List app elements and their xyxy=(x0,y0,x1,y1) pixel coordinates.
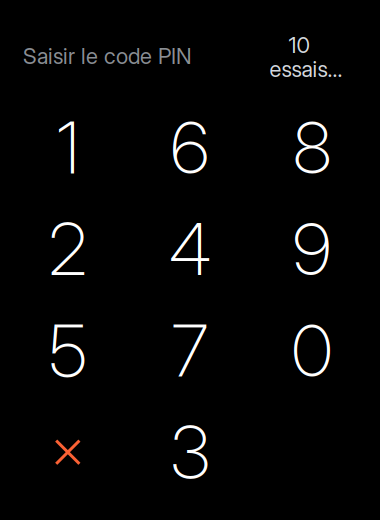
button[interactable]: Supprimer xyxy=(7,401,129,503)
staticText: 5 xyxy=(49,307,87,394)
staticText: essais... xyxy=(269,56,342,82)
button[interactable]: 9 xyxy=(251,198,373,300)
staticText: 8 xyxy=(293,104,331,191)
button[interactable]: 1 xyxy=(7,97,129,198)
button[interactable]: 6 xyxy=(129,97,251,198)
button[interactable]: 5 xyxy=(7,300,129,401)
staticText: 3 xyxy=(170,409,209,495)
button[interactable]: 3 xyxy=(129,401,251,503)
button[interactable]: 8 xyxy=(251,97,373,198)
button[interactable]: 0 xyxy=(251,300,373,401)
staticText: 4 xyxy=(169,206,211,292)
staticText: 10 xyxy=(288,32,309,58)
staticText: 9 xyxy=(292,206,331,292)
staticText: Saisir le code PIN xyxy=(23,43,192,69)
staticText: 2 xyxy=(48,206,87,292)
staticText: 0 xyxy=(291,307,332,394)
staticText: 7 xyxy=(171,307,208,394)
staticText: 6 xyxy=(170,104,209,191)
button[interactable]: 4 xyxy=(129,198,251,300)
button[interactable]: 7 xyxy=(129,300,251,401)
staticText: 1 xyxy=(56,104,79,191)
button[interactable]: 2 xyxy=(7,198,129,300)
